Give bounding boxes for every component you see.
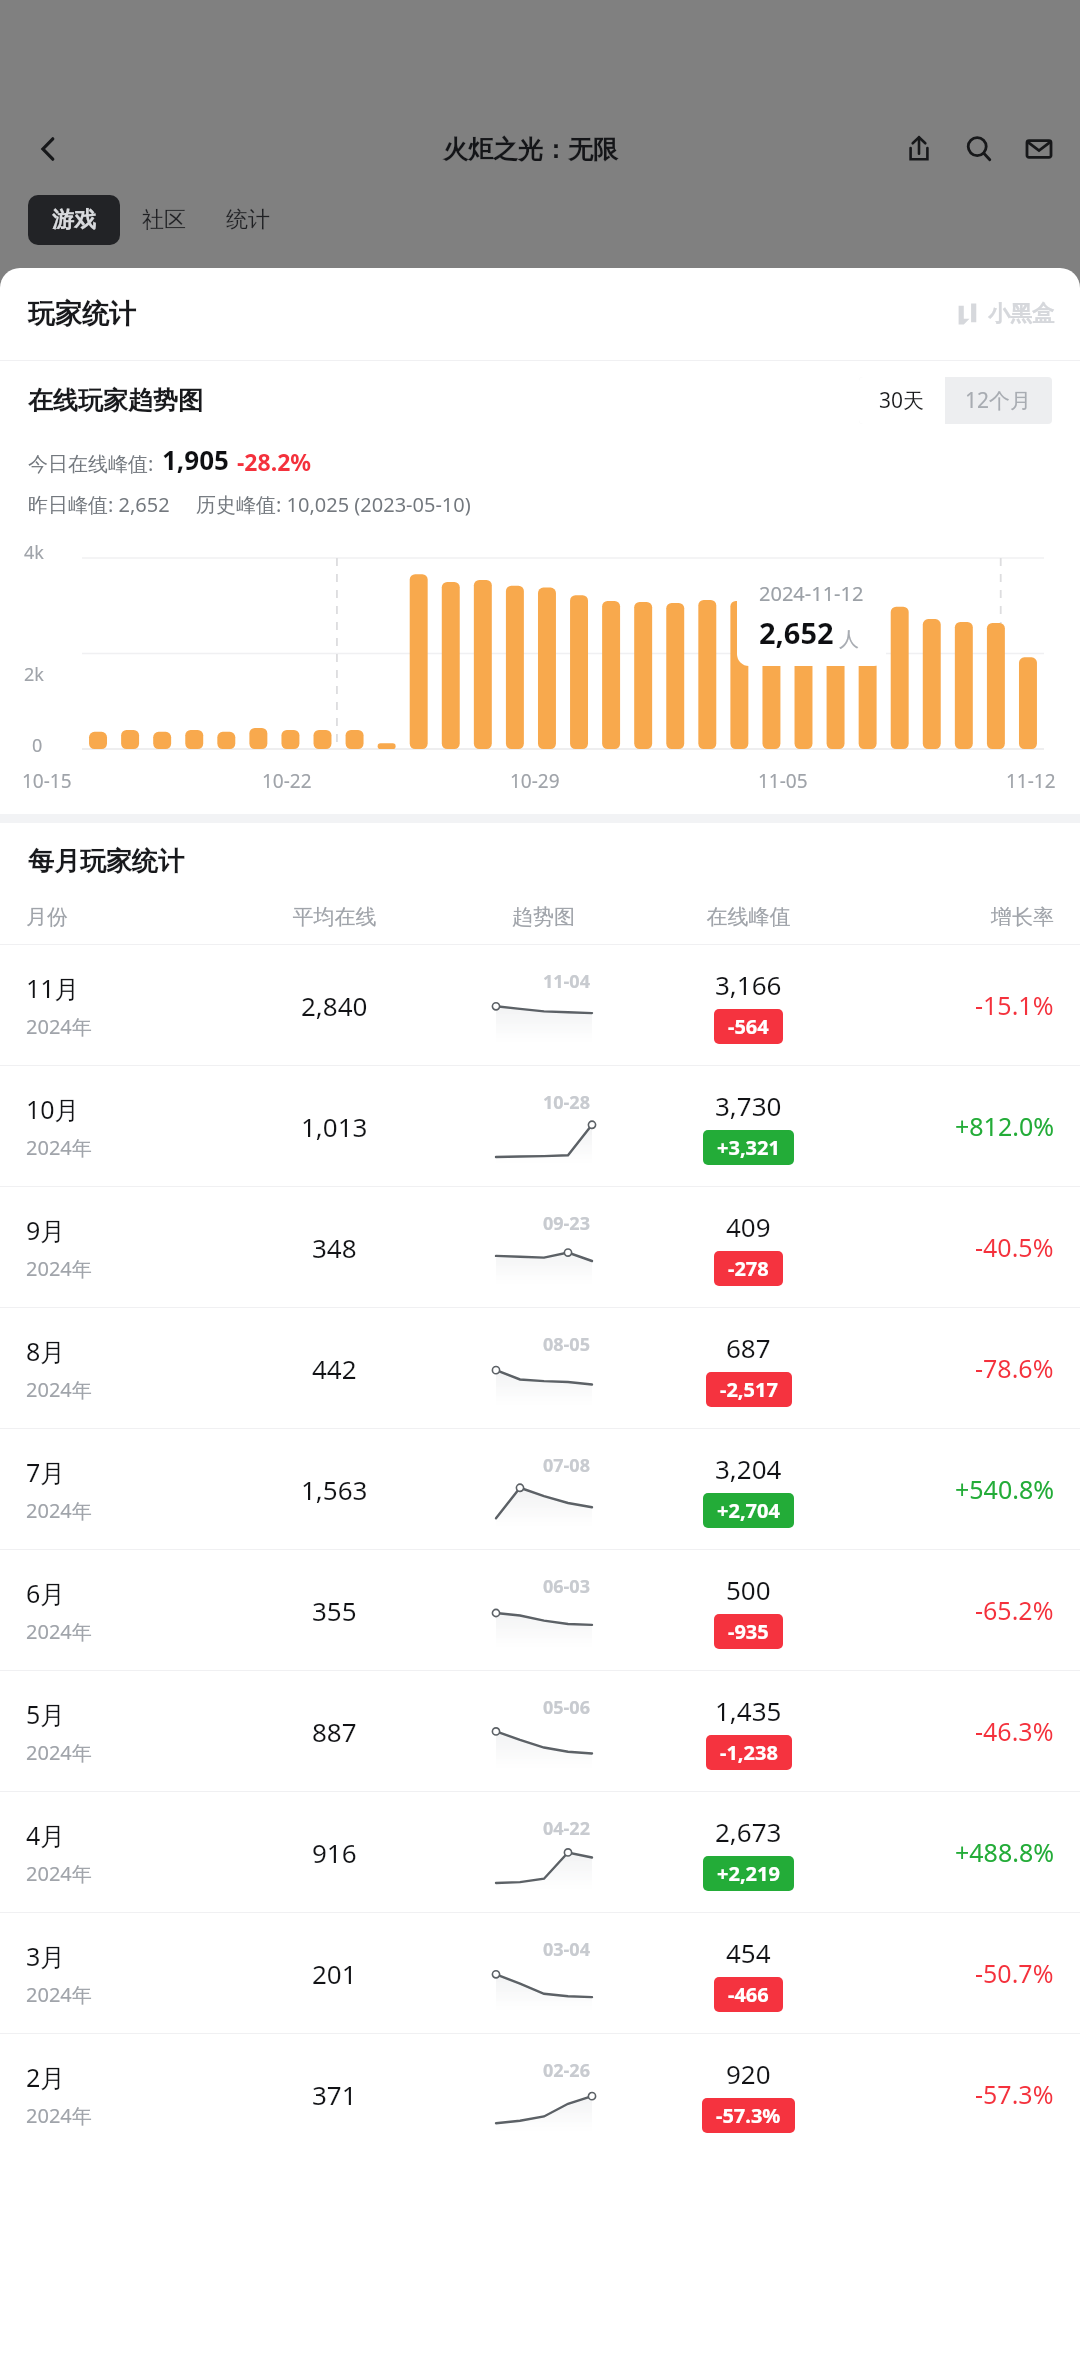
staticText: 4月 (26, 1818, 66, 1852)
staticText: -65.2% (975, 1593, 1054, 1627)
staticText: 09-23 (543, 1211, 590, 1236)
staticText: 10-15 (22, 768, 72, 794)
staticText: +540.8% (955, 1472, 1054, 1506)
button[interactable]: 游戏 (28, 195, 120, 245)
staticText: 355 (312, 1593, 357, 1628)
staticText: 每月玩家统计 (28, 845, 184, 878)
button[interactable]: Back (22, 123, 74, 175)
staticText: 11月 (26, 971, 80, 1005)
staticText: -466 (728, 1981, 769, 2008)
staticText: 916 (312, 1835, 357, 1870)
staticText: 2月 (26, 2060, 66, 2094)
staticText: 在线峰值 (644, 904, 853, 930)
button[interactable]: 11月 (0, 945, 1080, 1065)
staticText: -1,238 (720, 1739, 778, 1766)
staticText: 社区 (142, 206, 186, 234)
staticText: -278 (728, 1255, 769, 1282)
staticText: +488.8% (955, 1835, 1054, 1869)
staticText: 2024年 (26, 1134, 92, 1161)
staticText: 2k (24, 662, 44, 687)
staticText: 12个月 (965, 386, 1032, 415)
staticText: 442 (312, 1351, 357, 1386)
staticText: 2024年 (26, 1497, 92, 1524)
staticText: 火炬之光：无限 (443, 134, 618, 165)
staticText: 05-06 (543, 1695, 590, 1720)
button[interactable]: Search (956, 126, 1002, 172)
button[interactable]: 9月 (0, 1187, 1080, 1307)
staticText: 2024年 (26, 2102, 92, 2129)
staticText: 昨日峰值: 2,652 (28, 491, 170, 518)
staticText: -564 (728, 1013, 769, 1040)
staticText: 平均在线 (226, 904, 443, 930)
button[interactable]: Share (896, 126, 942, 172)
button[interactable]: 7月 (0, 1429, 1080, 1549)
staticText: 887 (312, 1714, 357, 1749)
staticText: 454 (726, 1935, 771, 1970)
staticText: 2024年 (26, 1376, 92, 1403)
staticText: -28.2% (237, 446, 312, 477)
staticText: 10-29 (510, 768, 560, 794)
staticText: 2024年 (26, 1860, 92, 1887)
staticText: 人 (839, 627, 859, 652)
staticText: 小黑盒 (988, 300, 1054, 328)
button[interactable]: 6月 (0, 1550, 1080, 1670)
staticText: 11-04 (543, 969, 590, 994)
staticText: 11-12 (1006, 768, 1056, 794)
staticText: 2024年 (26, 1013, 92, 1040)
staticText: 4k (24, 540, 44, 565)
staticText: -935 (728, 1618, 769, 1645)
staticText: 1,905 (162, 442, 229, 477)
staticText: 统计 (226, 206, 270, 234)
staticText: -78.6% (975, 1351, 1054, 1385)
staticText: 07-08 (543, 1453, 590, 1478)
staticText: 10月 (26, 1092, 80, 1126)
staticText: +3,321 (717, 1134, 780, 1161)
staticText: 3,166 (715, 967, 782, 1002)
staticText: 0 (32, 733, 43, 758)
staticText: 03-04 (543, 1937, 590, 1962)
button[interactable]: 8月 (0, 1308, 1080, 1428)
staticText: 2024年 (26, 1739, 92, 1766)
button[interactable]: Messages (1016, 126, 1062, 172)
button[interactable]: 12个月 (945, 377, 1052, 424)
staticText: 1,563 (301, 1472, 368, 1507)
staticText: 2,840 (301, 988, 368, 1023)
staticText: 2024年 (26, 1981, 92, 2008)
staticText: +2,219 (717, 1860, 780, 1887)
staticText: 02-26 (543, 2058, 590, 2083)
button[interactable]: 10月 (0, 1066, 1080, 1186)
staticText: 348 (312, 1230, 357, 1265)
staticText: 10-28 (543, 1090, 590, 1115)
staticText: 7月 (26, 1455, 66, 1489)
staticText: 371 (312, 2077, 357, 2112)
button[interactable]: 3月 (0, 1913, 1080, 2033)
staticText: 2024年 (26, 1618, 92, 1645)
button[interactable]: 30天 (859, 377, 945, 424)
staticText: 10-22 (262, 768, 312, 794)
staticText: 08-05 (543, 1332, 590, 1357)
staticText: 历史峰值: 10,025 (2023-05-10) (196, 491, 471, 518)
button[interactable]: 2月 (0, 2034, 1080, 2154)
staticText: 409 (726, 1209, 771, 1244)
staticText: -40.5% (975, 1230, 1054, 1264)
staticText: -15.1% (975, 988, 1054, 1022)
staticText: +812.0% (955, 1109, 1054, 1143)
button[interactable]: 社区 (120, 195, 208, 245)
button[interactable]: 5月 (0, 1671, 1080, 1791)
staticText: 3,204 (715, 1451, 782, 1486)
staticText: 5月 (26, 1697, 66, 1731)
staticText: 在线玩家趋势图 (28, 385, 203, 416)
staticText: 增长率 (853, 904, 1054, 930)
staticText: 687 (726, 1330, 771, 1365)
staticText: 2024-11-12 (759, 580, 864, 607)
staticText: 2,673 (715, 1814, 782, 1849)
staticText: 920 (726, 2056, 771, 2091)
staticText: 1,013 (301, 1109, 368, 1144)
button[interactable]: 4月 (0, 1792, 1080, 1912)
staticText: 04-22 (543, 1816, 590, 1841)
staticText: 11-05 (758, 768, 808, 794)
staticText: 201 (312, 1956, 357, 1991)
staticText: -46.3% (975, 1714, 1054, 1748)
button[interactable]: 统计 (208, 195, 288, 245)
staticText: -2,517 (720, 1376, 778, 1403)
